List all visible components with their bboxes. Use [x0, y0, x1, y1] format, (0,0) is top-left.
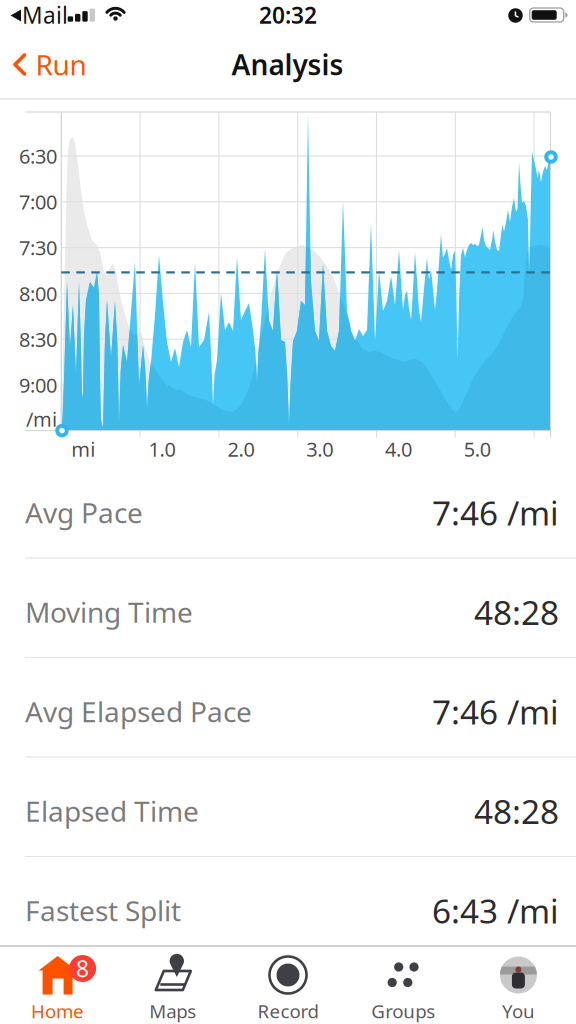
staticText: Moving Time [25, 593, 193, 631]
staticText: Mail [22, 0, 68, 30]
button[interactable]: 8 [0, 947, 115, 1024]
button[interactable]: You [461, 947, 576, 1024]
staticText: 20:32 [259, 0, 317, 30]
staticText: 1.0 [149, 436, 176, 462]
staticText: 8:00 [19, 280, 57, 307]
button[interactable]: Maps [115, 947, 230, 1024]
button[interactable]: Run [3, 45, 99, 83]
staticText: Analysis [231, 46, 343, 83]
button[interactable]: Groups [346, 947, 461, 1024]
staticText: Groups [371, 999, 435, 1023]
staticText: 48:28 [474, 789, 559, 833]
staticText: 7:46 /mi [432, 689, 559, 734]
staticText: 6:30 [19, 143, 57, 169]
staticText: 9:00 [19, 372, 57, 398]
staticText: You [502, 999, 535, 1023]
staticText: 5.0 [464, 436, 491, 462]
staticText: 7:30 [19, 234, 57, 261]
staticText: 8:30 [19, 326, 57, 352]
staticText: Run [35, 46, 86, 83]
staticText: Elapsed Time [25, 792, 199, 830]
staticText: 48:28 [474, 590, 559, 634]
staticText: 4.0 [385, 436, 412, 462]
staticText: 7:46 /mi [432, 490, 559, 535]
staticText: 3.0 [306, 436, 333, 462]
staticText: 2.0 [227, 436, 254, 462]
staticText: Fastest Split [25, 892, 181, 929]
staticText: Avg Pace [25, 494, 143, 531]
staticText: mi [71, 436, 95, 462]
staticText: Avg Elapsed Pace [25, 693, 252, 730]
staticText: Home [31, 999, 84, 1023]
staticText: 6:43 /mi [432, 888, 559, 933]
staticText: 8 [76, 953, 89, 983]
staticText: /mi [26, 406, 57, 432]
staticText: Maps [149, 999, 196, 1023]
staticText: 7:00 [19, 188, 57, 215]
button[interactable]: Record [230, 947, 346, 1024]
staticText: Record [257, 999, 318, 1023]
